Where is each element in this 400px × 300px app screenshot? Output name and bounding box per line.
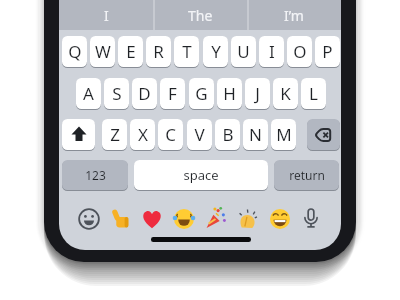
staticText: 123 xyxy=(85,167,106,183)
button[interactable]: R xyxy=(146,36,171,67)
staticText: I’m xyxy=(284,6,304,25)
staticText: X xyxy=(138,123,148,146)
staticText: P xyxy=(322,40,333,63)
staticText: I xyxy=(269,40,275,63)
staticText: Z xyxy=(110,123,120,146)
button[interactable]: 123 xyxy=(62,160,128,190)
staticText: return xyxy=(289,167,325,183)
button[interactable]: The xyxy=(153,0,247,30)
button[interactable]: F xyxy=(160,78,185,109)
staticText: A xyxy=(83,82,94,105)
button[interactable]: H xyxy=(217,78,242,109)
button[interactable]: P xyxy=(315,36,340,67)
staticText: G xyxy=(195,82,208,105)
staticText: M xyxy=(276,123,292,146)
staticText: K xyxy=(280,82,291,105)
button[interactable]: I xyxy=(259,36,284,67)
button[interactable]: T xyxy=(174,36,199,67)
button[interactable]: U xyxy=(231,36,256,67)
button[interactable]: Y xyxy=(203,36,228,67)
button[interactable]: D xyxy=(132,78,157,109)
button[interactable]: O xyxy=(287,36,312,67)
staticText: O xyxy=(293,40,307,63)
button[interactable]: C xyxy=(158,119,183,150)
staticText: space xyxy=(183,166,219,184)
button[interactable]: S xyxy=(104,78,129,109)
button[interactable]: G xyxy=(189,78,214,109)
staticText: B xyxy=(222,123,234,146)
staticText: U xyxy=(237,40,250,63)
button[interactable] xyxy=(236,207,260,231)
staticText: D xyxy=(138,82,151,105)
button[interactable] xyxy=(299,207,323,231)
button[interactable]: I xyxy=(59,0,153,30)
staticText: Q xyxy=(68,40,82,63)
staticText: S xyxy=(112,82,122,105)
button[interactable]: return xyxy=(274,160,339,190)
staticText: The xyxy=(188,6,213,25)
button[interactable] xyxy=(62,119,95,150)
staticText: W xyxy=(95,40,111,63)
staticText: F xyxy=(168,82,177,105)
staticText: N xyxy=(249,123,262,146)
button[interactable]: L xyxy=(301,78,326,109)
button[interactable]: X xyxy=(130,119,155,150)
staticText: V xyxy=(194,123,205,146)
button[interactable]: space xyxy=(134,160,268,190)
button[interactable]: N xyxy=(243,119,268,150)
staticText: R xyxy=(153,40,164,63)
button[interactable]: M xyxy=(271,119,296,150)
button[interactable]: Z xyxy=(102,119,127,150)
button[interactable]: K xyxy=(273,78,298,109)
button[interactable] xyxy=(307,119,340,150)
button[interactable]: J xyxy=(245,78,270,109)
button[interactable]: I’m xyxy=(247,0,341,30)
staticText: T xyxy=(182,40,192,63)
staticText: L xyxy=(309,82,318,105)
button[interactable] xyxy=(77,207,101,231)
staticText: I xyxy=(104,6,109,25)
button[interactable] xyxy=(268,207,292,231)
button[interactable]: V xyxy=(187,119,212,150)
button[interactable]: E xyxy=(118,36,143,67)
staticText: E xyxy=(126,40,136,63)
staticText: C xyxy=(165,123,176,146)
staticText: J xyxy=(255,82,260,105)
button[interactable]: Q xyxy=(62,36,87,67)
button[interactable]: A xyxy=(76,78,101,109)
button[interactable] xyxy=(109,207,133,231)
button[interactable]: B xyxy=(215,119,240,150)
button[interactable] xyxy=(140,207,164,231)
button[interactable]: W xyxy=(90,36,115,67)
button[interactable] xyxy=(204,207,228,231)
staticText: Y xyxy=(211,40,221,63)
staticText: H xyxy=(223,82,236,105)
button[interactable] xyxy=(172,207,196,231)
